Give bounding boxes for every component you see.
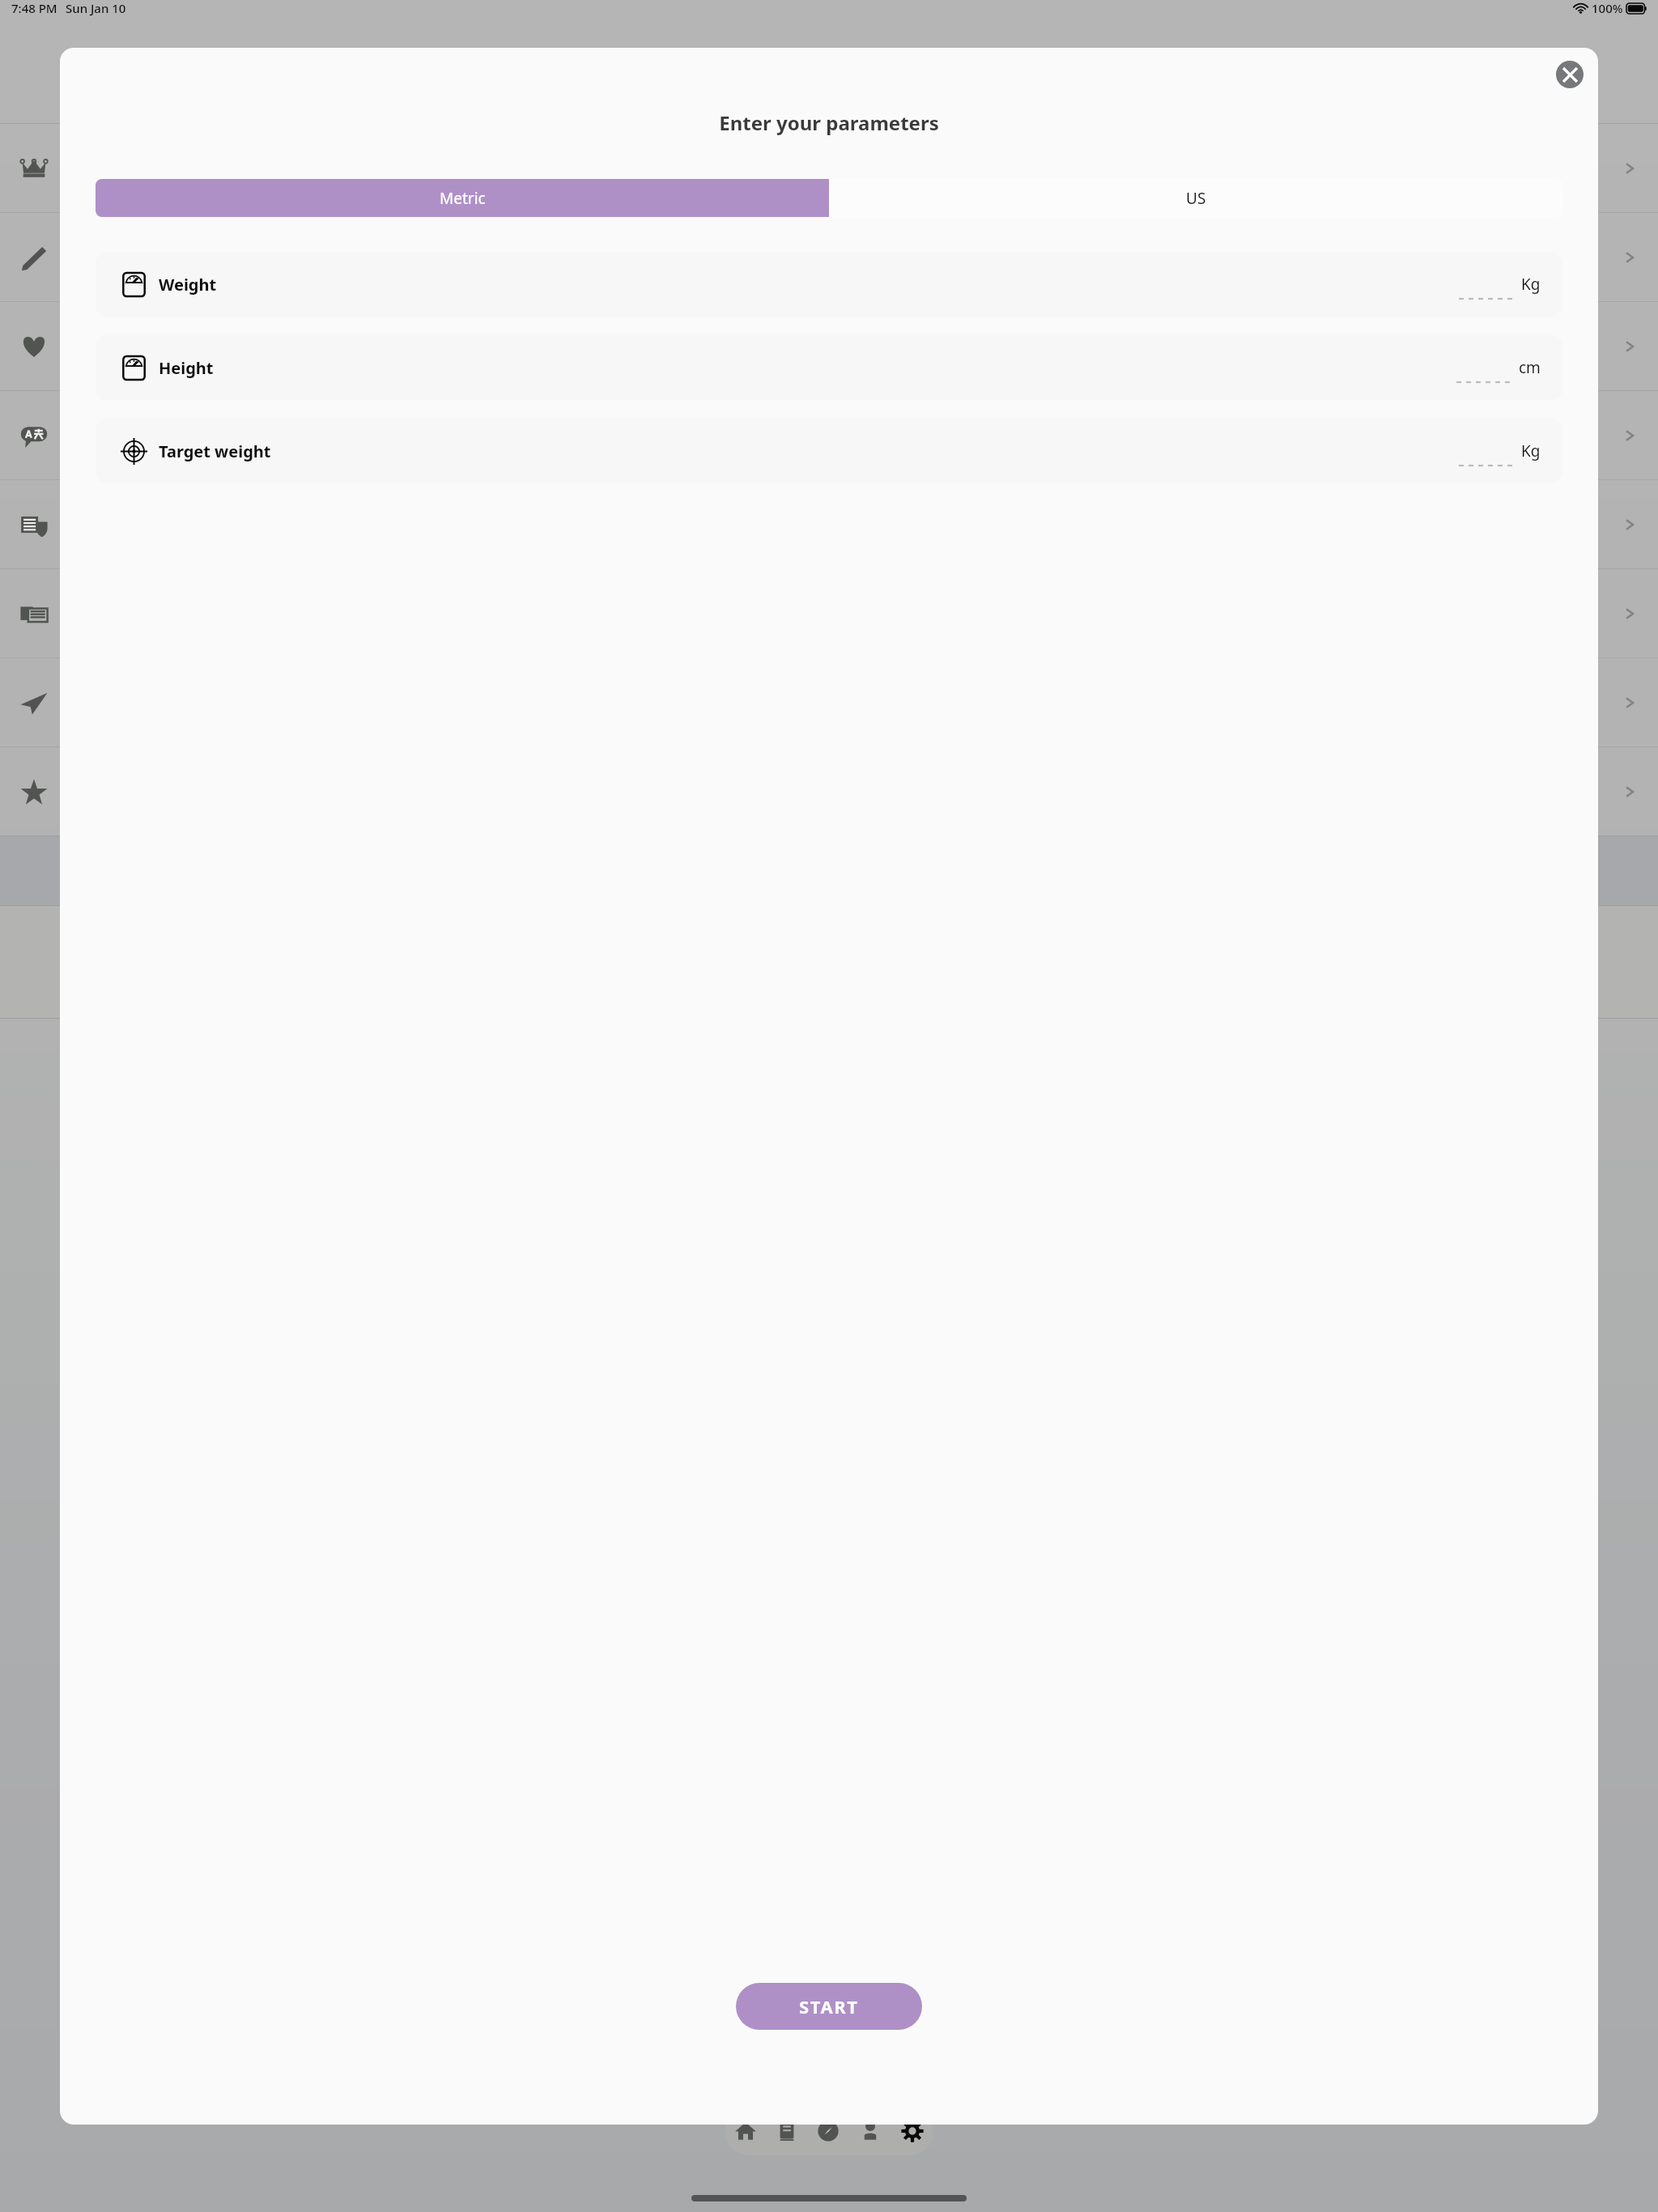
button[interactable]: Height xyxy=(96,335,1562,400)
staticText: Kg xyxy=(1521,440,1541,462)
button[interactable]: Weight xyxy=(96,252,1562,317)
button[interactable]: Settings xyxy=(891,2107,933,2155)
staticText: 100% xyxy=(1592,0,1623,16)
button[interactable] xyxy=(0,302,1658,390)
button[interactable] xyxy=(0,569,1658,657)
staticText: Metric xyxy=(440,188,486,209)
button[interactable]: US xyxy=(829,179,1562,217)
staticText: Kg xyxy=(1521,274,1541,295)
button[interactable]: START xyxy=(736,1983,922,2030)
staticText: US xyxy=(1186,188,1206,209)
staticText: Weight xyxy=(159,274,217,296)
staticText: Enter your parameters xyxy=(719,109,939,136)
button[interactable]: Explore xyxy=(807,2107,849,2155)
staticText: cm xyxy=(1519,357,1541,378)
button[interactable] xyxy=(0,391,1658,479)
button[interactable]: Target weight xyxy=(96,419,1562,483)
button[interactable]: Home xyxy=(725,2107,766,2155)
button[interactable] xyxy=(0,213,1658,301)
button[interactable] xyxy=(0,658,1658,747)
button[interactable]: Library xyxy=(766,2107,807,2155)
staticText: Sun Jan 10 xyxy=(66,0,126,16)
staticText: START xyxy=(799,1994,859,2018)
staticText: Height xyxy=(159,357,214,379)
button[interactable] xyxy=(0,480,1658,568)
button[interactable] xyxy=(0,124,1658,212)
button[interactable]: Profile xyxy=(849,2107,891,2155)
button[interactable] xyxy=(0,747,1658,836)
staticText: Target weight xyxy=(159,440,271,462)
button[interactable]: Close xyxy=(1556,61,1584,88)
staticText: 7:48 PM xyxy=(11,0,57,16)
button[interactable]: Metric xyxy=(96,179,829,217)
